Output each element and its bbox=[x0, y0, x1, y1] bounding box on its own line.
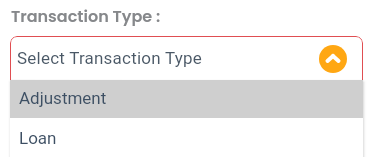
button[interactable]: Select Transaction Type bbox=[10, 36, 363, 94]
staticText: Select Transaction Type bbox=[17, 48, 202, 68]
staticText: Adjustment bbox=[19, 88, 107, 108]
button[interactable]: Loan bbox=[10, 118, 363, 157]
button[interactable]: Adjustment bbox=[10, 80, 363, 118]
staticText: Loan bbox=[19, 128, 57, 148]
staticText: Transaction Type : bbox=[11, 5, 161, 27]
button[interactable]: Collapse dropdown bbox=[319, 45, 347, 73]
